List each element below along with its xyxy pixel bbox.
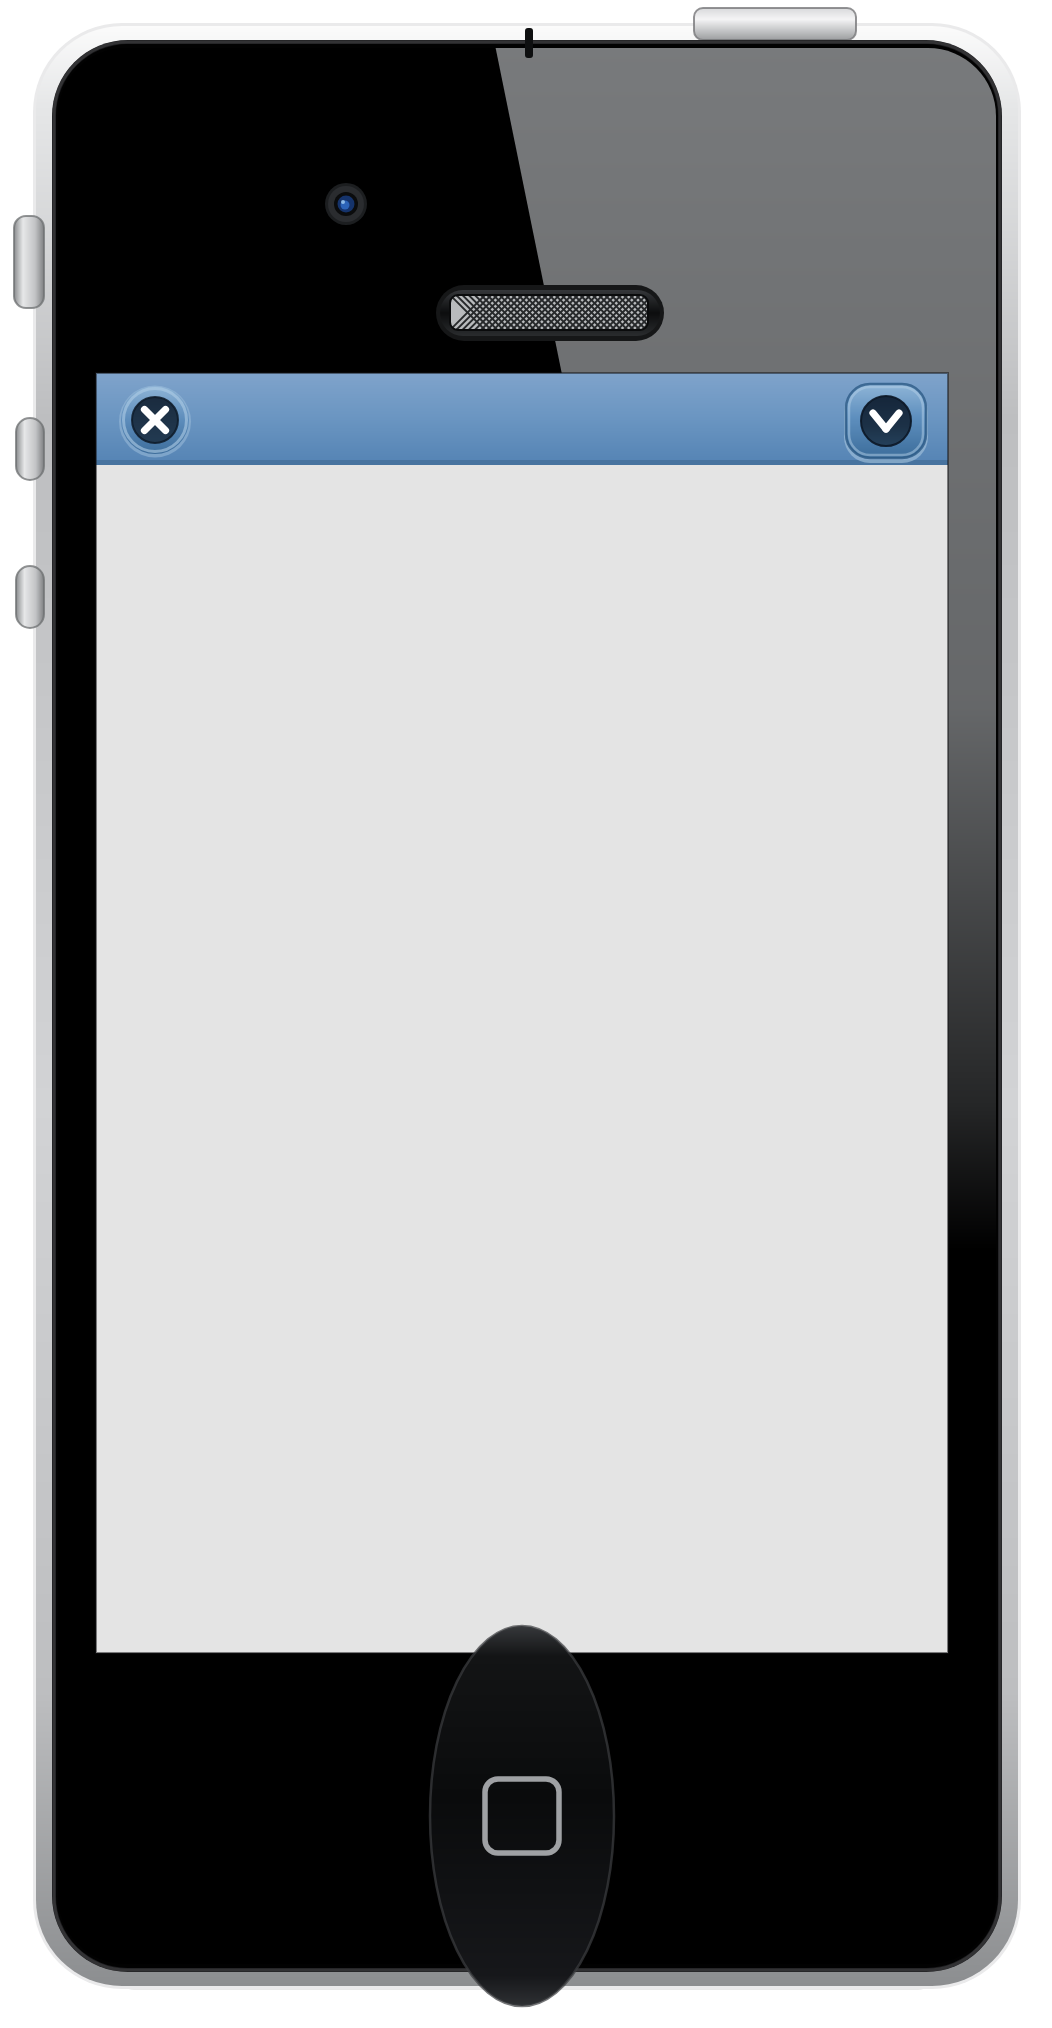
button[interactable]: Home (430, 1626, 614, 2006)
button[interactable]: Close (121, 386, 189, 454)
button[interactable]: Collapse (846, 384, 926, 458)
